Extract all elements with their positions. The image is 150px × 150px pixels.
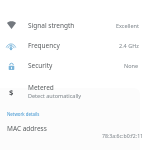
button[interactable]: Signal strength xyxy=(0,15,150,35)
other: Security xyxy=(7,62,16,71)
staticText: Security xyxy=(28,61,53,70)
staticText: Metered xyxy=(28,83,54,92)
staticText: Detect automatically xyxy=(28,92,82,99)
staticText: 2.4 GHz xyxy=(119,42,139,49)
staticText: Excellent xyxy=(116,22,139,29)
other: Signal strength xyxy=(7,20,16,29)
other: Frequency xyxy=(6,40,16,50)
staticText: 78:3a:6c:b0:f2:11 xyxy=(102,132,144,139)
button[interactable]: MAC address xyxy=(0,124,150,140)
button[interactable]: Frequency xyxy=(0,35,150,55)
other: Metered xyxy=(7,87,16,96)
button[interactable]: Metered xyxy=(0,81,150,101)
staticText: Signal strength xyxy=(28,21,75,30)
staticText: Frequency xyxy=(28,41,60,50)
staticText: Network details xyxy=(7,111,40,117)
button[interactable]: Network details xyxy=(7,111,40,117)
staticText: $ xyxy=(9,87,14,96)
staticText: None xyxy=(124,62,139,69)
staticText: MAC address xyxy=(7,124,47,133)
button[interactable]: Security xyxy=(0,55,150,75)
